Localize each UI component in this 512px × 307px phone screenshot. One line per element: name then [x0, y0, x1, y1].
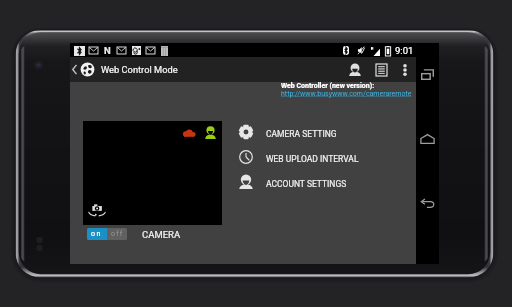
- button[interactable]: off: [107, 228, 127, 240]
- button[interactable]: Web Control Mode: [70, 57, 184, 82]
- button[interactable]: CAMERA SETTING: [239, 127, 404, 141]
- button[interactable]: on: [87, 228, 107, 240]
- staticText: off: [111, 230, 124, 238]
- staticText: CAMERA: [142, 229, 181, 240]
- staticText: WEB UPLOAD INTERVAL: [266, 154, 359, 164]
- button[interactable]: Recent apps: [416, 63, 439, 86]
- staticText: Web Controller (new version):: [281, 82, 375, 90]
- staticText: N: [104, 45, 111, 56]
- button[interactable]: WEB UPLOAD INTERVAL: [239, 152, 404, 166]
- button[interactable]: Account: [342, 57, 368, 82]
- button[interactable]: Back: [416, 192, 439, 215]
- button[interactable]: Log list: [368, 57, 394, 82]
- button[interactable]: http://www.busywww.com/cameraremote: [281, 90, 412, 98]
- staticText: Web Control Mode: [101, 64, 178, 75]
- staticText: ACCOUNT SETTINGS: [266, 179, 347, 189]
- button[interactable]: Home: [416, 127, 439, 150]
- button[interactable]: ACCOUNT SETTINGS: [239, 177, 404, 191]
- staticText: on: [91, 230, 103, 238]
- button[interactable]: Switch camera: [88, 204, 106, 216]
- button[interactable]: More options: [394, 57, 416, 82]
- staticText: 9:01: [395, 45, 414, 56]
- staticText: CAMERA SETTING: [266, 129, 337, 139]
